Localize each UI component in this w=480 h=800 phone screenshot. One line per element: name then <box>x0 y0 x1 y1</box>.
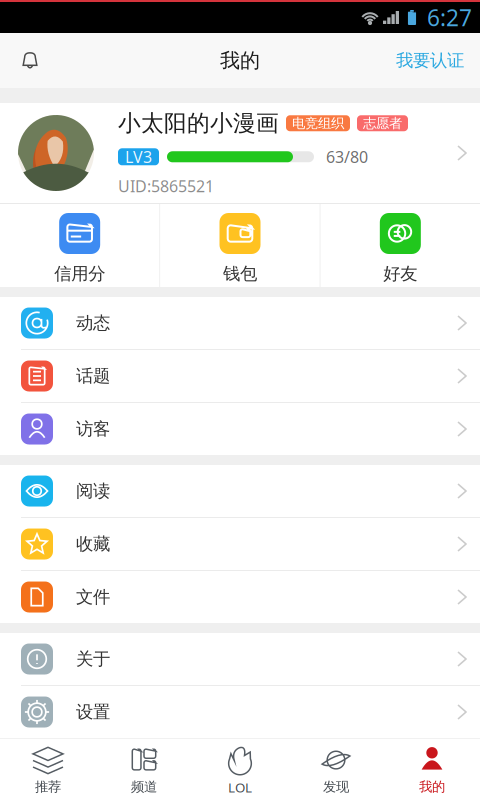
button[interactable]: 我要认证 <box>380 33 480 88</box>
staticText: 关于 <box>76 648 110 670</box>
staticText: UID:5865521 <box>118 175 214 197</box>
button[interactable]: 好友 <box>321 204 480 287</box>
staticText: LOL <box>228 778 252 796</box>
staticText: 63/80 <box>326 146 368 167</box>
staticText: 频道 <box>131 778 157 795</box>
staticText: 钱包 <box>223 263 257 284</box>
staticText: 6:27 <box>427 2 472 32</box>
staticText: 信用分 <box>54 263 105 284</box>
button[interactable]: LOL <box>192 738 288 800</box>
staticText: 志愿者 <box>363 115 402 131</box>
button[interactable]: 我的 <box>384 738 480 800</box>
staticText: 好友 <box>383 263 417 284</box>
button[interactable]: 通知 <box>0 33 60 88</box>
staticText: 话题 <box>76 365 110 387</box>
staticText: 访客 <box>76 418 110 440</box>
staticText: 推荐 <box>35 778 61 795</box>
staticText: LV3 <box>125 146 152 167</box>
staticText: 我要认证 <box>396 50 464 71</box>
button[interactable]: 小太阳的小漫画 <box>0 103 480 203</box>
button[interactable]: 收藏 <box>0 518 480 570</box>
button[interactable]: 关于 <box>0 633 480 685</box>
button[interactable]: 钱包 <box>160 204 320 287</box>
staticText: 动态 <box>76 312 110 334</box>
button[interactable]: 文件 <box>0 571 480 623</box>
staticText: 电竞组织 <box>292 115 344 131</box>
button[interactable]: 发现 <box>288 738 384 800</box>
button[interactable]: 信用分 <box>0 204 159 287</box>
staticText: 设置 <box>76 701 110 723</box>
button[interactable]: 频道 <box>96 738 192 800</box>
staticText: 小太阳的小漫画 <box>118 109 279 137</box>
staticText: 我的 <box>220 48 260 73</box>
button[interactable]: 话题 <box>0 350 480 402</box>
staticText: 我的 <box>419 778 445 795</box>
button[interactable]: 设置 <box>0 686 480 738</box>
button[interactable]: 阅读 <box>0 465 480 517</box>
staticText: 发现 <box>323 778 349 795</box>
staticText: 文件 <box>76 586 110 608</box>
staticText: 收藏 <box>76 533 110 555</box>
staticText: 阅读 <box>76 480 110 502</box>
button[interactable]: 动态 <box>0 297 480 349</box>
button[interactable]: 推荐 <box>0 738 96 800</box>
button[interactable]: 访客 <box>0 403 480 455</box>
